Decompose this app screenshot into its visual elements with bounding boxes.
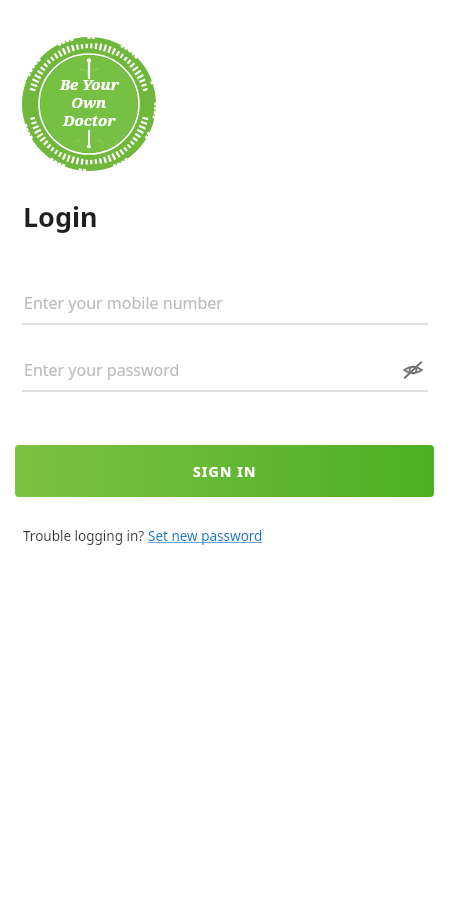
button[interactable]: Set new password [148,527,263,545]
staticText: Own [71,92,107,112]
staticText: Enter your mobile number [24,292,223,314]
staticText: Doctor [63,110,116,130]
staticText: Trouble logging in? [23,527,148,545]
button[interactable]: SIGN IN [15,445,434,497]
button[interactable]: Enter your mobile number [22,287,428,325]
staticText: Be Your [60,74,119,94]
button[interactable]: Show password [400,357,426,383]
staticText: Enter your password [24,359,180,381]
staticText: Login [23,198,98,235]
staticText: Set new password [148,527,263,545]
button[interactable]: Enter your password [22,354,428,392]
staticText: SIGN IN [193,462,257,481]
